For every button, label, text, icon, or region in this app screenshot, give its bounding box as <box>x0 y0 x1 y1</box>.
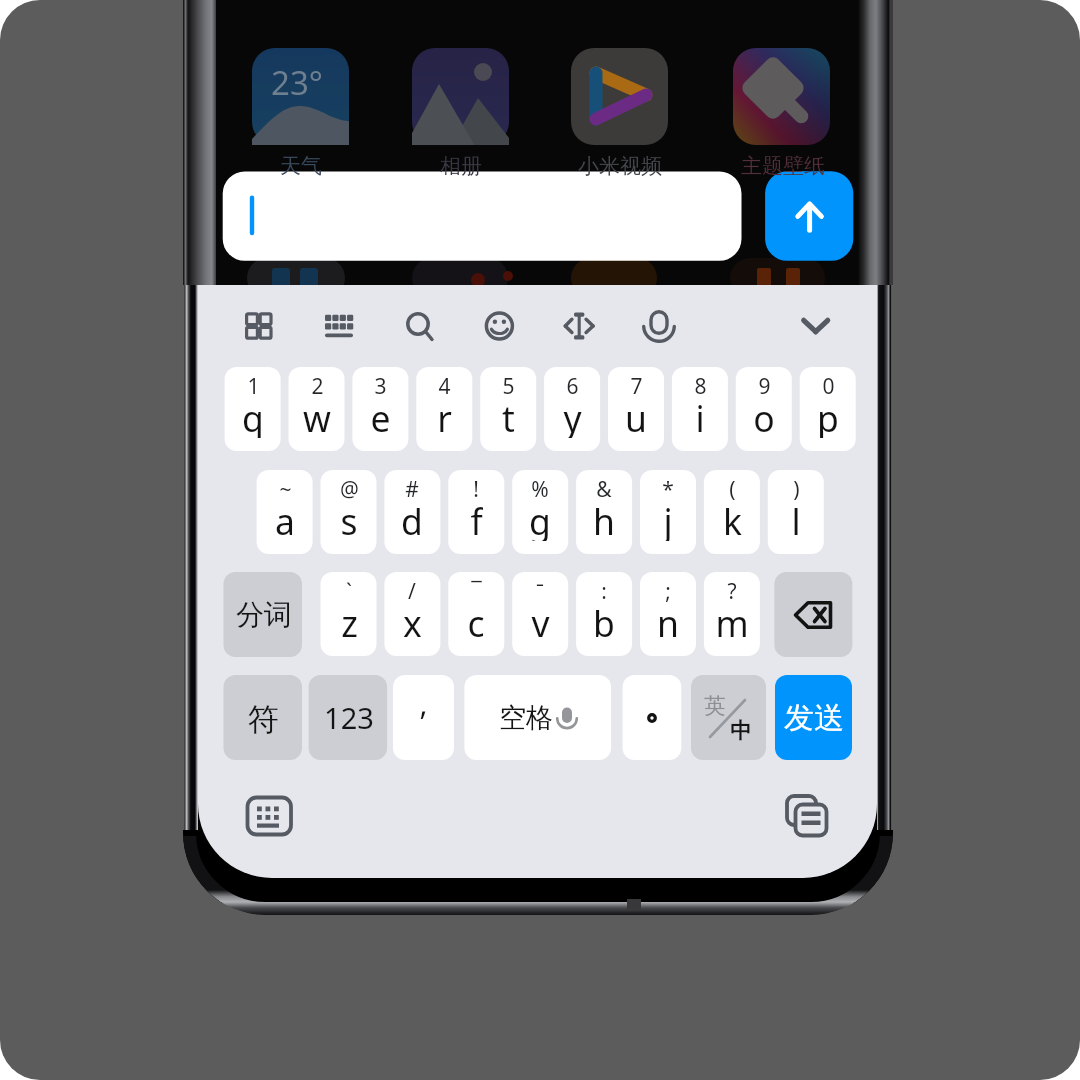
staticText: 空格 <box>499 701 553 735</box>
staticText: x <box>403 599 422 643</box>
button[interactable] <box>416 367 472 451</box>
staticText: ( <box>729 475 736 504</box>
button[interactable]: Text editing <box>551 298 607 354</box>
staticText: q <box>242 394 264 438</box>
staticText: ? <box>727 577 737 606</box>
staticText: t <box>502 394 515 438</box>
button[interactable] <box>544 367 600 451</box>
button[interactable] <box>800 367 856 451</box>
staticText: r <box>437 394 452 438</box>
staticText: @ <box>340 475 359 504</box>
staticText: f <box>470 497 483 541</box>
button[interactable] <box>672 367 728 451</box>
staticText: 分词 <box>236 597 292 632</box>
staticText: 小米视频 <box>578 153 662 179</box>
button[interactable] <box>512 470 568 554</box>
button[interactable] <box>704 470 760 554</box>
button[interactable] <box>384 572 440 656</box>
staticText: d <box>401 497 423 541</box>
button[interactable]: More <box>230 298 286 354</box>
button[interactable]: Backspace <box>774 572 852 657</box>
button[interactable] <box>257 470 313 554</box>
staticText: 2 <box>311 372 324 401</box>
button[interactable] <box>775 675 852 760</box>
staticText: v <box>531 599 550 643</box>
staticText: 6 <box>566 372 579 401</box>
staticText: s <box>340 497 358 541</box>
staticText: & <box>596 475 612 504</box>
button[interactable] <box>448 470 504 554</box>
staticText: i <box>695 394 705 438</box>
button[interactable] <box>704 572 760 656</box>
staticText: p <box>817 394 839 438</box>
staticText: 3 <box>374 372 387 401</box>
staticText: b <box>593 599 615 643</box>
button[interactable] <box>640 470 696 554</box>
button[interactable] <box>640 572 696 656</box>
staticText: a <box>275 497 295 541</box>
button[interactable]: Themes <box>733 48 830 145</box>
staticText: 符 <box>248 700 279 739</box>
button[interactable] <box>224 572 303 657</box>
button[interactable] <box>321 470 377 554</box>
button[interactable] <box>393 675 454 760</box>
staticText: ˋ <box>346 577 352 606</box>
button[interactable]: Gallery <box>412 48 509 145</box>
button[interactable] <box>622 675 682 760</box>
staticText: 中 <box>730 717 752 744</box>
staticText: o <box>753 394 775 438</box>
staticText: 天气 <box>280 153 322 179</box>
button[interactable]: Weather <box>252 48 349 145</box>
staticText: u <box>625 394 647 438</box>
button[interactable]: Switch keyboard <box>243 792 295 840</box>
button[interactable] <box>225 367 281 451</box>
button[interactable] <box>512 572 568 656</box>
staticText: 23° <box>271 60 323 104</box>
button[interactable] <box>768 470 824 554</box>
button[interactable]: Voice input <box>631 298 687 354</box>
staticText: 5 <box>502 372 515 401</box>
staticText: ~ <box>279 475 292 504</box>
staticText: , <box>419 683 428 724</box>
button[interactable]: Text input <box>222 177 742 257</box>
staticText: h <box>593 497 615 541</box>
button[interactable] <box>448 572 504 656</box>
staticText: g <box>529 497 551 541</box>
staticText: y <box>563 394 582 438</box>
button[interactable]: Search <box>390 298 446 354</box>
staticText: 8 <box>694 372 707 401</box>
staticText: 主题壁纸 <box>741 153 825 179</box>
button[interactable] <box>384 470 440 554</box>
button[interactable] <box>691 675 766 760</box>
button[interactable] <box>289 367 345 451</box>
button[interactable] <box>463 675 613 760</box>
staticText: 相册 <box>440 153 482 179</box>
staticText: 123 <box>324 698 374 737</box>
button[interactable]: Send <box>765 175 853 258</box>
button[interactable] <box>224 675 303 760</box>
staticText: 英 <box>704 692 726 719</box>
button[interactable]: Mi Video <box>571 48 668 145</box>
staticText: ˉ <box>536 577 544 606</box>
staticText: 4 <box>438 372 451 401</box>
button[interactable] <box>736 367 792 451</box>
button[interactable] <box>576 572 632 656</box>
button[interactable] <box>352 367 408 451</box>
button[interactable]: Hide keyboard <box>787 298 843 354</box>
staticText: ¯ <box>471 577 482 606</box>
button[interactable] <box>608 367 664 451</box>
button[interactable]: Emoji <box>471 298 527 354</box>
button[interactable] <box>480 367 536 451</box>
button[interactable]: Keyboard layout <box>310 298 366 354</box>
staticText: w <box>303 394 331 438</box>
staticText: # <box>405 475 419 504</box>
staticText: j <box>663 497 673 541</box>
button[interactable] <box>576 470 632 554</box>
staticText: : <box>601 577 607 606</box>
button[interactable] <box>321 572 377 656</box>
button[interactable] <box>309 675 388 760</box>
staticText: / <box>408 577 416 606</box>
staticText: % <box>531 475 549 504</box>
button[interactable]: Clipboard <box>782 792 832 840</box>
staticText: 发送 <box>784 699 844 737</box>
